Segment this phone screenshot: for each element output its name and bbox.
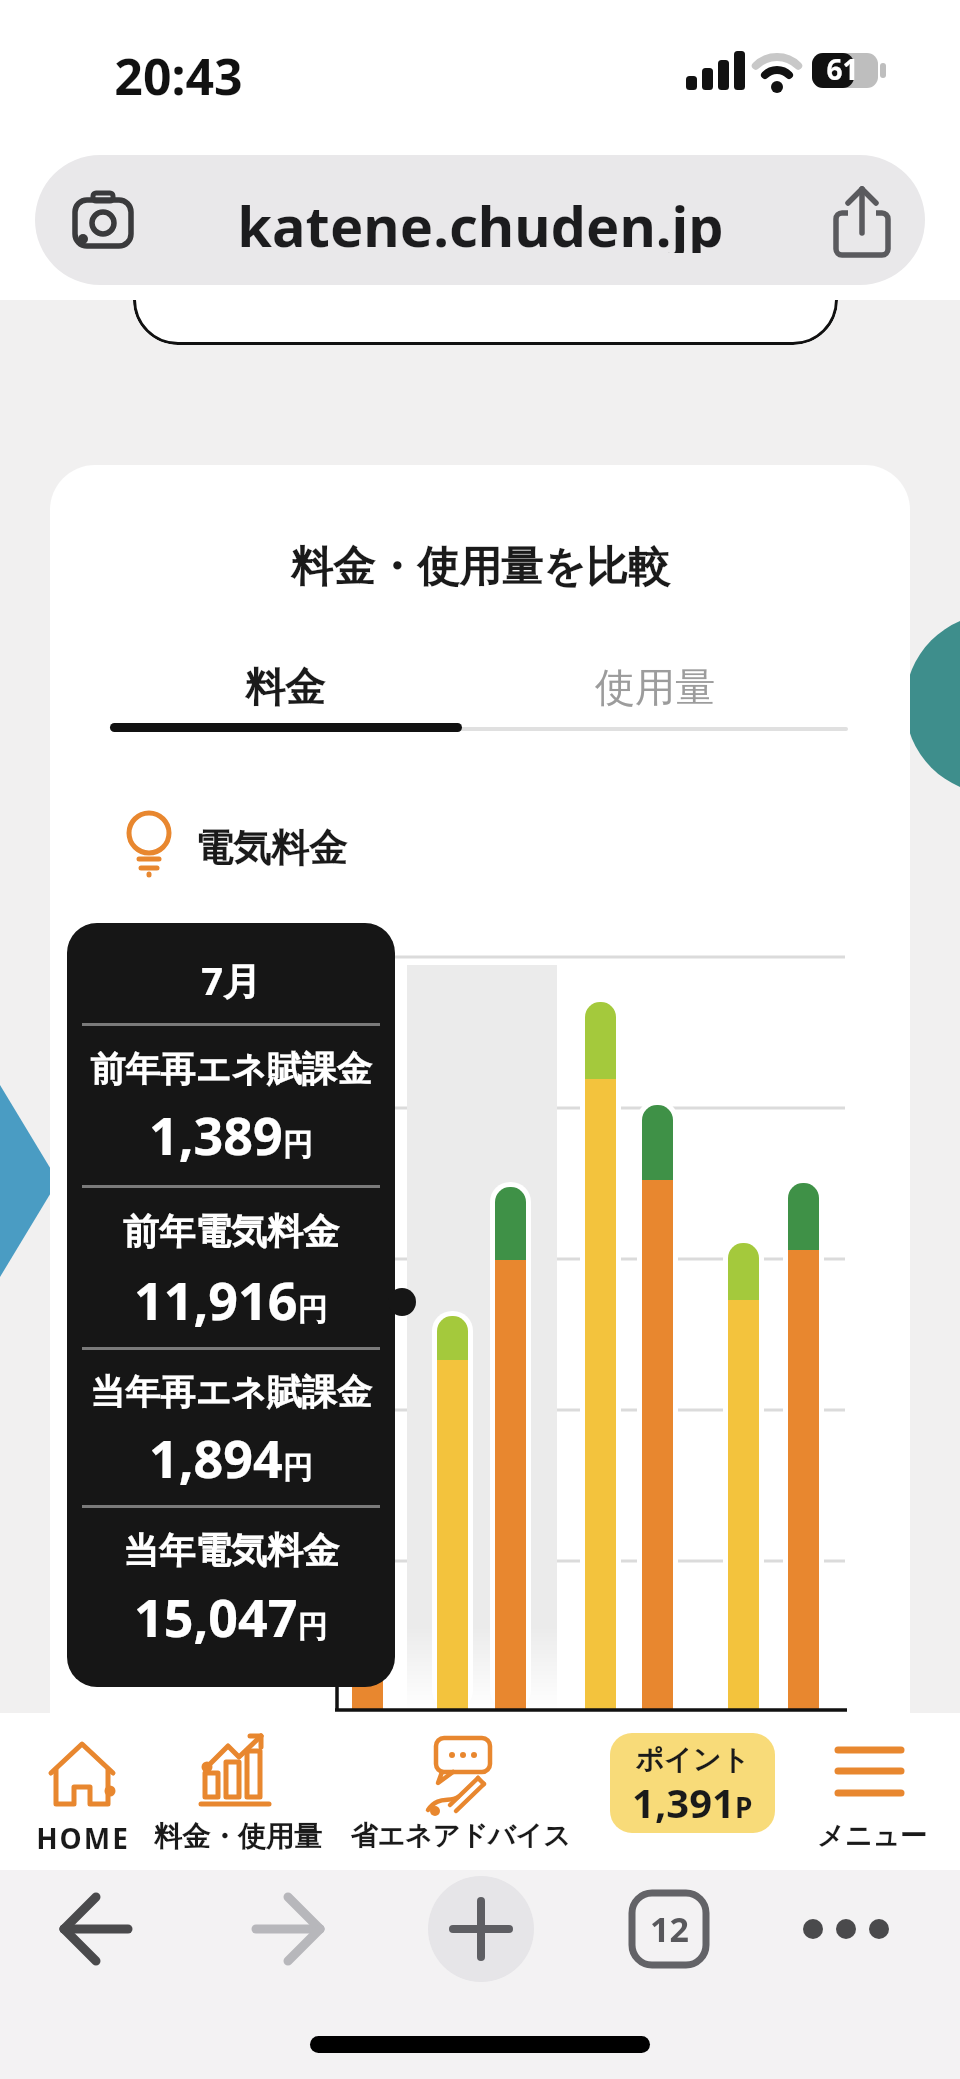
button[interactable]: 料金・使用量 [150, 1713, 325, 1870]
staticText: 料金・使用量 [154, 1819, 322, 1853]
staticText: 15,047円 [134, 1581, 328, 1651]
staticText: 電気料金 [195, 824, 347, 872]
staticText: メニュー [817, 1819, 927, 1853]
staticText: HOME [36, 1819, 130, 1853]
staticText: 当年電気料金 [123, 1528, 339, 1573]
staticText: 61 [826, 50, 859, 86]
button[interactable]: 料金 [185, 657, 385, 717]
staticText: 1,894円 [149, 1422, 313, 1492]
button[interactable]: 省エネアドバイス [338, 1713, 582, 1870]
staticText: katene.chuden.jp [237, 187, 724, 253]
staticText: 料金 [245, 662, 325, 712]
staticText: 料金・使用量を比較 [291, 541, 670, 594]
staticText: 使用量 [595, 662, 715, 712]
staticText: ポイント [635, 1742, 750, 1777]
staticText: 当年再エネ賦課金 [90, 1370, 372, 1414]
button[interactable] [796, 1879, 896, 1979]
button[interactable] [238, 1879, 338, 1979]
staticText: 11,916円 [134, 1264, 328, 1334]
staticText: 12 [650, 1906, 689, 1952]
button[interactable] [428, 1876, 534, 1982]
button[interactable]: HOME [25, 1713, 140, 1870]
staticText: 1,389円 [149, 1099, 313, 1169]
button[interactable] [622, 1883, 716, 1975]
staticText: 省エネアドバイス [350, 1819, 571, 1853]
button[interactable]: 使用量 [555, 657, 755, 717]
button[interactable]: katene.chuden.jp [35, 155, 925, 285]
staticText: 20:43 [114, 42, 243, 98]
staticText: 前年電気料金 [123, 1209, 339, 1254]
staticText: 前年再エネ賦課金 [90, 1047, 372, 1091]
button[interactable] [45, 1879, 145, 1979]
staticText: 1,391P [632, 1775, 753, 1825]
button[interactable]: メニュー [812, 1713, 932, 1870]
staticText: 7月 [201, 954, 261, 1006]
button[interactable]: ポイント [610, 1733, 775, 1833]
